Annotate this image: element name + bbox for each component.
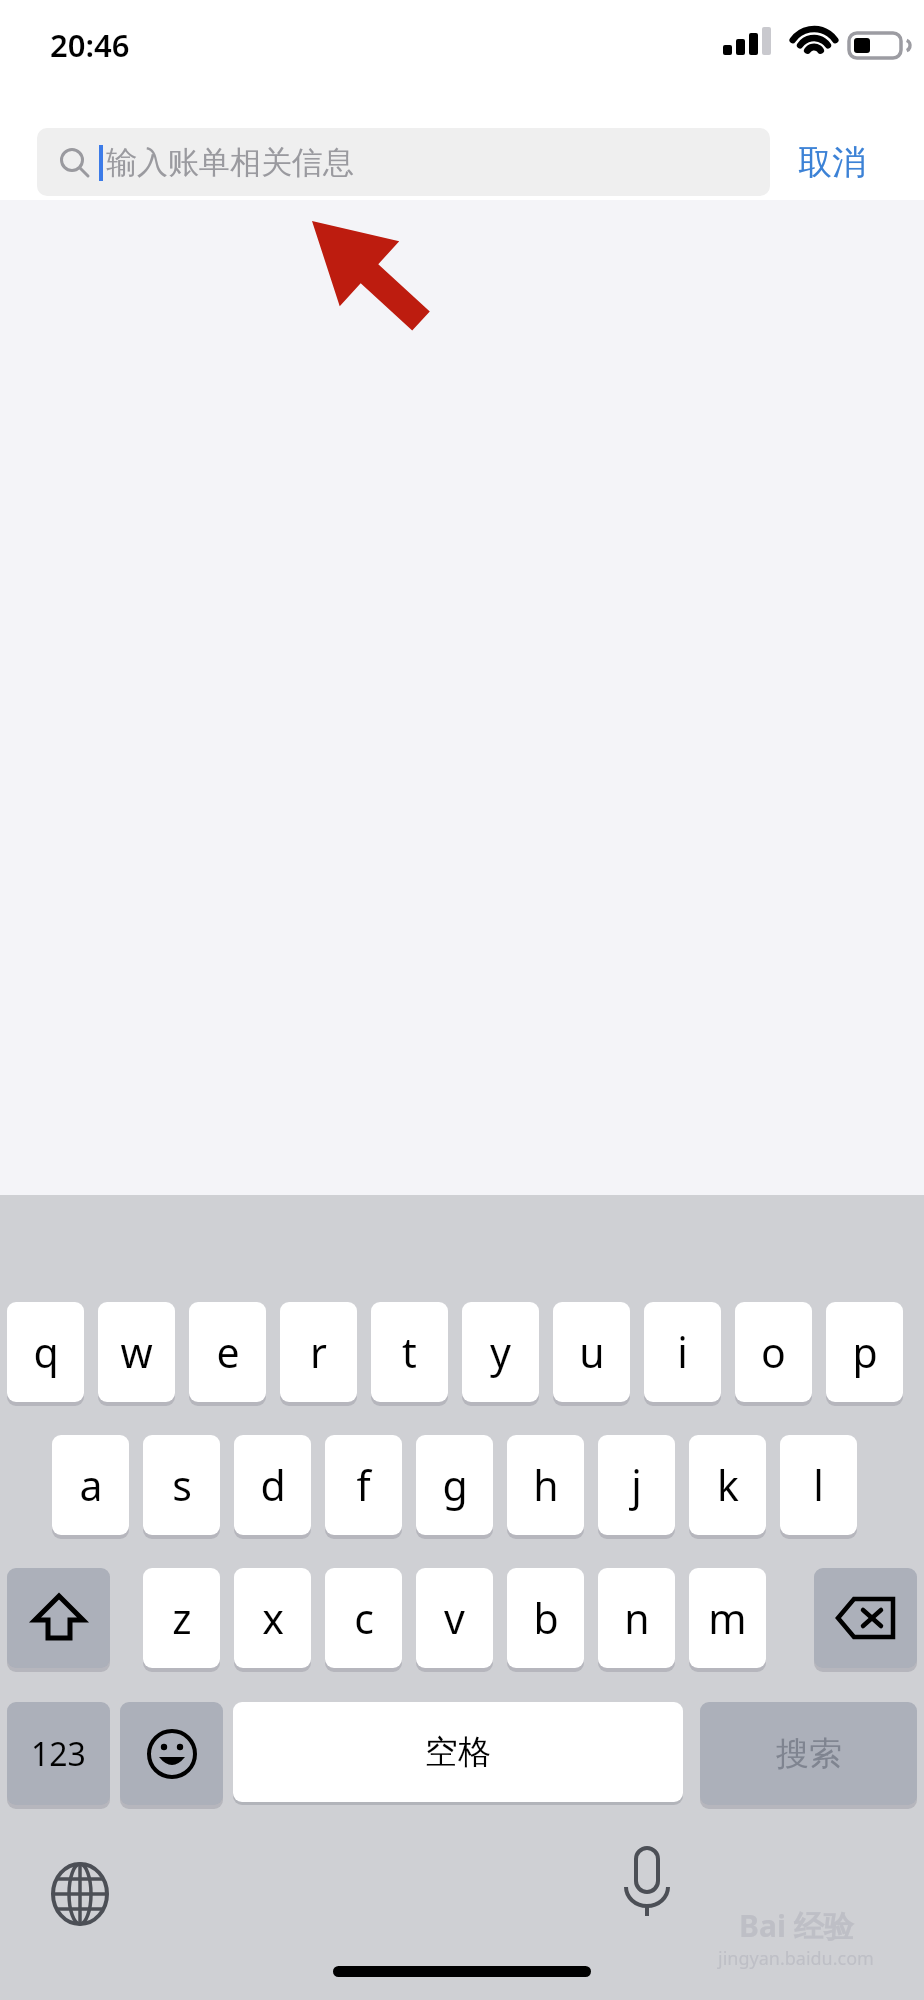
staticText: Bai 经验: [739, 1905, 854, 1946]
staticText: b: [533, 1590, 559, 1646]
button[interactable]: a: [52, 1435, 129, 1535]
button[interactable]: 输入账单相关信息: [37, 128, 770, 196]
staticText: v: [444, 1590, 465, 1646]
button[interactable]: x: [234, 1568, 311, 1668]
button[interactable]: f: [325, 1435, 402, 1535]
staticText: z: [172, 1590, 192, 1646]
button[interactable]: z: [143, 1568, 220, 1668]
staticText: c: [354, 1590, 374, 1646]
button[interactable]: Backspace: [814, 1568, 917, 1668]
button[interactable]: v: [416, 1568, 493, 1668]
button[interactable]: Voice input: [610, 1845, 684, 1919]
button[interactable]: i: [644, 1302, 721, 1402]
staticText: l: [813, 1457, 824, 1513]
staticText: x: [262, 1590, 284, 1646]
button[interactable]: r: [280, 1302, 357, 1402]
button[interactable]: u: [553, 1302, 630, 1402]
staticText: h: [533, 1457, 559, 1513]
button[interactable]: Numbers: [7, 1702, 110, 1805]
staticText: e: [216, 1324, 240, 1380]
button[interactable]: b: [507, 1568, 584, 1668]
staticText: n: [624, 1590, 650, 1646]
staticText: k: [717, 1457, 739, 1513]
button[interactable]: q: [7, 1302, 84, 1402]
button[interactable]: p: [826, 1302, 903, 1402]
staticText: d: [260, 1457, 286, 1513]
staticText: y: [490, 1324, 511, 1380]
staticText: 空格: [425, 1731, 491, 1773]
staticText: 输入账单相关信息: [106, 143, 354, 182]
staticText: 搜索: [776, 1733, 842, 1775]
staticText: i: [677, 1324, 688, 1380]
staticText: p: [852, 1324, 878, 1380]
button[interactable]: c: [325, 1568, 402, 1668]
staticText: u: [579, 1324, 605, 1380]
button[interactable]: h: [507, 1435, 584, 1535]
staticText: 20:46: [50, 24, 130, 66]
button[interactable]: l: [780, 1435, 857, 1535]
button[interactable]: m: [689, 1568, 766, 1668]
staticText: 123: [31, 1732, 86, 1776]
staticText: f: [356, 1457, 371, 1513]
staticText: m: [708, 1590, 747, 1646]
button[interactable]: n: [598, 1568, 675, 1668]
button[interactable]: Search: [700, 1702, 917, 1805]
staticText: t: [402, 1324, 417, 1380]
staticText: q: [33, 1324, 59, 1380]
button[interactable]: e: [189, 1302, 266, 1402]
button[interactable]: t: [371, 1302, 448, 1402]
button[interactable]: j: [598, 1435, 675, 1535]
button[interactable]: Change keyboard language: [46, 1860, 114, 1928]
button[interactable]: Shift: [7, 1568, 110, 1668]
button[interactable]: 取消: [798, 128, 866, 196]
button[interactable]: Emoji: [120, 1702, 223, 1805]
staticText: g: [442, 1457, 468, 1513]
staticText: jingyan.baidu.com: [718, 1946, 874, 1971]
staticText: j: [631, 1457, 642, 1513]
button[interactable]: o: [735, 1302, 812, 1402]
staticText: a: [79, 1457, 103, 1513]
staticText: s: [172, 1457, 192, 1513]
button[interactable]: y: [462, 1302, 539, 1402]
button[interactable]: w: [98, 1302, 175, 1402]
button[interactable]: d: [234, 1435, 311, 1535]
button[interactable]: s: [143, 1435, 220, 1535]
staticText: 取消: [798, 141, 866, 184]
staticText: r: [310, 1324, 327, 1380]
button[interactable]: g: [416, 1435, 493, 1535]
staticText: o: [761, 1324, 786, 1380]
staticText: w: [120, 1324, 153, 1380]
button[interactable]: k: [689, 1435, 766, 1535]
button[interactable]: 空格: [233, 1702, 683, 1802]
